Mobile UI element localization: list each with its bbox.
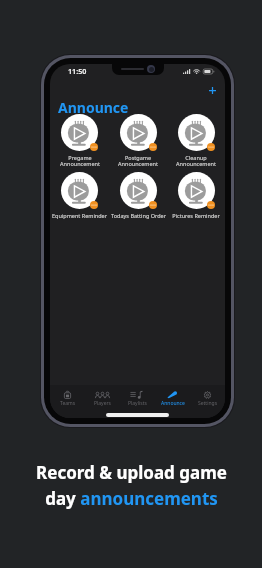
staticText: Announce xyxy=(58,98,129,117)
button[interactable]: Postgame Announcement xyxy=(109,114,167,168)
button[interactable]: Cleanup Announcement xyxy=(167,114,225,168)
button[interactable]: Players xyxy=(85,385,120,406)
staticText: Todays Batting Order xyxy=(111,212,166,219)
staticText: 11:50 xyxy=(68,66,87,76)
button[interactable]: Pregame Announcement xyxy=(50,114,109,168)
button[interactable]: Announce xyxy=(155,385,190,406)
button[interactable]: Teams xyxy=(50,385,85,406)
staticText: Postgame Announcement xyxy=(118,154,158,168)
staticText: Teams xyxy=(60,400,76,406)
button[interactable]: Settings xyxy=(190,385,225,406)
button[interactable]: Equipment Reminder xyxy=(50,172,109,219)
button[interactable]: Pictures Reminder xyxy=(167,172,225,219)
staticText: Cleanup Announcement xyxy=(176,154,216,168)
staticText: Pregame Announcement xyxy=(60,154,100,168)
staticText: Equipment Reminder xyxy=(52,212,107,219)
button[interactable]: Todays Batting Order xyxy=(109,172,167,219)
staticText: Players xyxy=(94,400,111,406)
staticText: Settings xyxy=(198,400,218,406)
staticText: Pictures Reminder xyxy=(172,212,220,219)
staticText: Record & upload game day announcements xyxy=(36,461,227,510)
staticText: Announce xyxy=(161,400,185,406)
button[interactable]: Playlists xyxy=(120,385,155,406)
staticText: Playlists xyxy=(128,400,147,406)
button[interactable]: Add announcement xyxy=(204,82,220,98)
